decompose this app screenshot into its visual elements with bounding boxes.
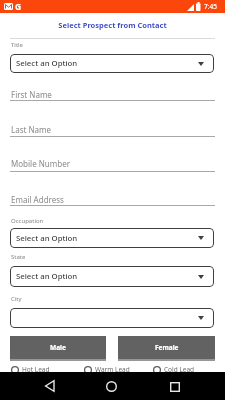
button[interactable] bbox=[10, 308, 214, 328]
staticText: Hot Lead bbox=[22, 365, 50, 374]
staticText: Last Name bbox=[11, 124, 52, 135]
button[interactable] bbox=[45, 380, 55, 392]
button[interactable]: Select an Option bbox=[10, 266, 214, 287]
button[interactable] bbox=[10, 122, 215, 137]
staticText: Cold Lead bbox=[164, 365, 195, 374]
staticText: City bbox=[11, 295, 22, 303]
staticText: Select an Option bbox=[16, 233, 78, 244]
staticText: Select an Option bbox=[16, 58, 78, 69]
staticText: 7:45 bbox=[204, 2, 217, 11]
button[interactable] bbox=[150, 364, 190, 372]
staticText: Select Prospect from Contact bbox=[0, 20, 225, 30]
staticText: Warm Lead bbox=[95, 365, 130, 374]
staticText: Email Address bbox=[11, 194, 64, 205]
button[interactable] bbox=[10, 192, 215, 206]
staticText: Occupation bbox=[11, 217, 44, 225]
staticText: First Name bbox=[11, 89, 52, 100]
button[interactable] bbox=[170, 382, 180, 392]
staticText: Male bbox=[50, 343, 66, 352]
staticText: Female bbox=[155, 343, 179, 352]
button[interactable]: Female bbox=[118, 336, 215, 359]
staticText: Select an Option bbox=[16, 271, 78, 282]
staticText: G bbox=[15, 1, 22, 13]
button[interactable] bbox=[10, 87, 215, 101]
button[interactable]: Select an Option bbox=[10, 228, 214, 248]
button[interactable] bbox=[10, 156, 215, 172]
button[interactable] bbox=[106, 381, 117, 392]
button[interactable]: Select an Option bbox=[10, 54, 214, 73]
staticText: Mobile Number bbox=[11, 158, 70, 169]
staticText: Title bbox=[11, 41, 23, 49]
staticText: State bbox=[11, 253, 26, 261]
button[interactable]: Male bbox=[10, 336, 106, 359]
button[interactable] bbox=[81, 364, 121, 372]
button[interactable] bbox=[8, 364, 48, 372]
